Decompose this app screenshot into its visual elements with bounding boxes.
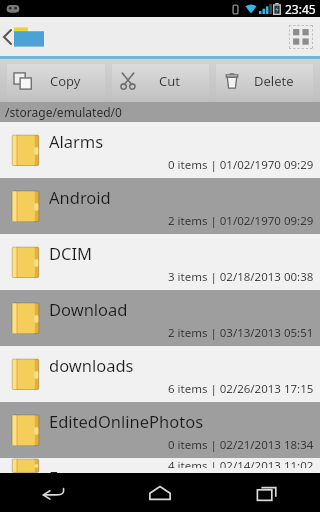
button[interactable]: Download (0, 290, 320, 346)
button[interactable]: Android (0, 178, 320, 234)
staticText: Delete (254, 72, 294, 90)
button[interactable]: Cut (112, 64, 209, 97)
staticText: DCIM (49, 242, 93, 264)
staticText: downloads (49, 354, 134, 376)
button[interactable]: downloads (0, 346, 320, 402)
button[interactable]: View mode (288, 24, 314, 50)
button[interactable]: Evernote (0, 458, 320, 473)
staticText: Cut (159, 72, 180, 90)
staticText: Alarms (49, 130, 104, 152)
staticText: 23:45 (285, 1, 316, 17)
staticText: 4 items | 02/14/2013 11:02 (168, 458, 314, 468)
button[interactable]: Recents (213, 473, 320, 512)
staticText: 3 items | 02/18/2013 00:38 (168, 269, 314, 285)
staticText: EditedOnlinePhotos (49, 410, 204, 432)
button[interactable]: Up (0, 17, 50, 56)
staticText: Evernote (49, 466, 119, 473)
staticText: /storage/emulated/0 (5, 104, 122, 120)
button[interactable]: DCIM (0, 234, 320, 290)
staticText: 2 items | 03/13/2013 05:51 (168, 325, 314, 341)
staticText: 2 items | 01/02/1970 09:29 (168, 213, 314, 229)
staticText: 6 items | 02/26/2013 17:15 (168, 381, 314, 397)
staticText: Copy (50, 72, 81, 90)
button[interactable]: Delete (216, 64, 313, 97)
button[interactable]: Back (0, 473, 106, 512)
button[interactable]: Home (106, 473, 213, 512)
button[interactable]: Copy (7, 64, 105, 97)
button[interactable]: EditedOnlinePhotos (0, 402, 320, 458)
staticText: Download (49, 298, 128, 320)
staticText: Android (49, 186, 111, 208)
staticText: 0 items | 02/21/2013 18:34 (168, 437, 314, 453)
button[interactable]: Alarms (0, 122, 320, 178)
staticText: 0 items | 01/02/1970 09:29 (168, 157, 314, 173)
